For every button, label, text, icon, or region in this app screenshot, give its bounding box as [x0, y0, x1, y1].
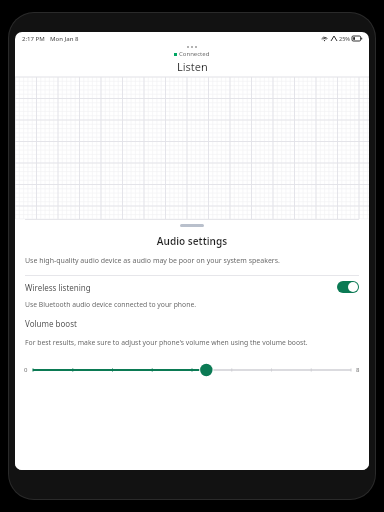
button[interactable]: Wireless listening toggle	[337, 281, 359, 293]
staticText: Use high-quality audio device as audio m…	[25, 256, 280, 266]
button[interactable]: Volume boost	[15, 318, 369, 329]
button[interactable]: Wireless listening	[15, 276, 369, 298]
button[interactable]	[180, 224, 204, 227]
staticText: Listen	[177, 59, 208, 74]
staticText: 0	[24, 366, 28, 374]
staticText: 2:17 PM	[22, 35, 45, 43]
staticText: Mon Jan 8	[50, 35, 79, 43]
staticText: Connected	[179, 50, 210, 58]
staticText: Audio settings	[15, 234, 369, 248]
staticText: 8	[356, 366, 360, 374]
staticText: Use Bluetooth audio device connected to …	[25, 300, 197, 309]
staticText: Wireless listening	[25, 282, 337, 293]
staticText: For best results, make sure to adjust yo…	[25, 338, 308, 347]
staticText: 25%	[339, 35, 350, 42]
button[interactable]: 0	[15, 361, 369, 379]
